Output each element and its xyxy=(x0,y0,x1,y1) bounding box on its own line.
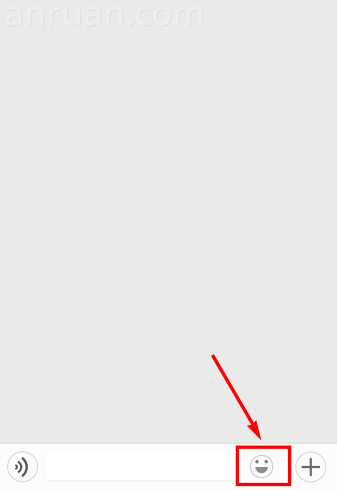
button[interactable]: More xyxy=(296,452,326,482)
button[interactable]: Emoji xyxy=(247,452,277,482)
button[interactable]: Voice message xyxy=(8,452,38,482)
